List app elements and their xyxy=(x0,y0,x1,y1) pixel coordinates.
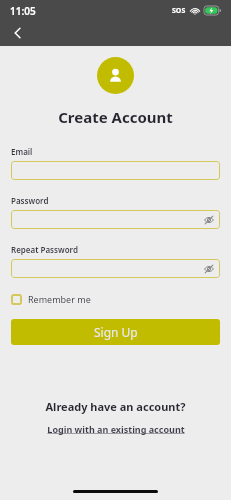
button[interactable] xyxy=(11,161,220,180)
staticText: Email xyxy=(11,146,33,157)
staticText: Create Account xyxy=(0,107,231,127)
staticText: 11:05 xyxy=(10,4,36,18)
staticText: Already have an account? xyxy=(0,399,231,414)
button[interactable]: Sign Up xyxy=(11,319,220,345)
button[interactable]: Toggle password visibility xyxy=(11,210,220,229)
button[interactable]: Login with an existing account xyxy=(0,423,231,435)
staticText: Login with an existing account xyxy=(47,423,185,435)
button[interactable]: Toggle password visibility xyxy=(202,262,215,275)
staticText: Repeat Password xyxy=(11,244,78,255)
staticText: Sign Up xyxy=(94,324,138,340)
button[interactable]: Toggle password visibility xyxy=(202,213,215,226)
staticText: Remember me xyxy=(28,293,91,305)
button[interactable]: Toggle password visibility xyxy=(11,259,220,278)
button[interactable]: Back xyxy=(6,21,30,45)
button[interactable]: Profile avatar xyxy=(97,57,134,94)
staticText: SOS xyxy=(172,6,186,16)
button[interactable]: Remember me xyxy=(11,293,91,305)
staticText: Password xyxy=(11,195,49,206)
